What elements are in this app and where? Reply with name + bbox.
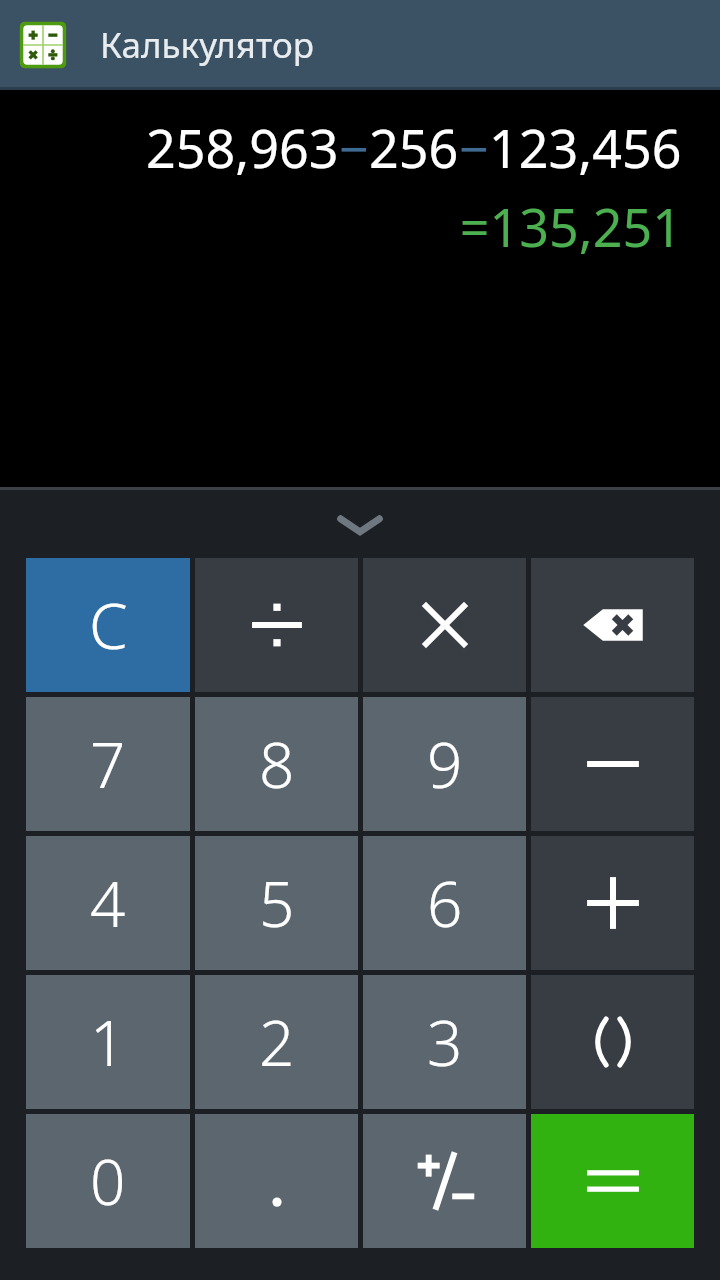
button[interactable]: 8 bbox=[195, 697, 358, 831]
button[interactable]: 1 bbox=[26, 975, 190, 1109]
button[interactable]: 4 bbox=[26, 836, 190, 970]
staticText: 5 bbox=[259, 861, 295, 945]
button[interactable]: Backspace bbox=[531, 558, 694, 692]
staticText: 7 bbox=[90, 722, 126, 806]
button[interactable]: C bbox=[26, 558, 190, 692]
staticText: 2 bbox=[259, 1000, 295, 1084]
button[interactable]: Subtract bbox=[531, 697, 694, 831]
button[interactable]: 0 bbox=[26, 1114, 190, 1248]
staticText: 4 bbox=[90, 861, 126, 945]
button[interactable]: 9 bbox=[363, 697, 526, 831]
button[interactable]: Multiply bbox=[363, 558, 526, 692]
staticText: 256 bbox=[369, 112, 459, 183]
button[interactable]: 2 bbox=[195, 975, 358, 1109]
button[interactable]: 3 bbox=[363, 975, 526, 1109]
staticText: − bbox=[459, 112, 489, 183]
button[interactable]: Divide bbox=[195, 558, 358, 692]
button[interactable]: Collapse history bbox=[0, 490, 720, 558]
button[interactable]: Parentheses bbox=[531, 975, 694, 1109]
button[interactable]: 5 bbox=[195, 836, 358, 970]
button[interactable]: 6 bbox=[363, 836, 526, 970]
staticText: Калькулятор bbox=[100, 21, 314, 69]
button[interactable]: Decimal point bbox=[195, 1114, 358, 1248]
staticText: C bbox=[89, 583, 128, 667]
staticText: 1 bbox=[90, 1000, 126, 1084]
staticText: 0 bbox=[90, 1139, 126, 1223]
staticText: 258,963 bbox=[146, 112, 339, 183]
staticText: − bbox=[339, 112, 369, 183]
staticText: 9 bbox=[427, 722, 463, 806]
button[interactable]: Plus minus bbox=[363, 1114, 526, 1248]
staticText: =135,251 bbox=[459, 191, 682, 262]
staticText: 6 bbox=[427, 861, 463, 945]
button[interactable]: Add bbox=[531, 836, 694, 970]
other: Calculator icon bbox=[14, 16, 72, 74]
button[interactable]: 7 bbox=[26, 697, 190, 831]
staticText: 123,456 bbox=[489, 112, 682, 183]
button[interactable]: Equals bbox=[531, 1114, 694, 1248]
staticText: 8 bbox=[259, 722, 295, 806]
staticText: 3 bbox=[427, 1000, 463, 1084]
